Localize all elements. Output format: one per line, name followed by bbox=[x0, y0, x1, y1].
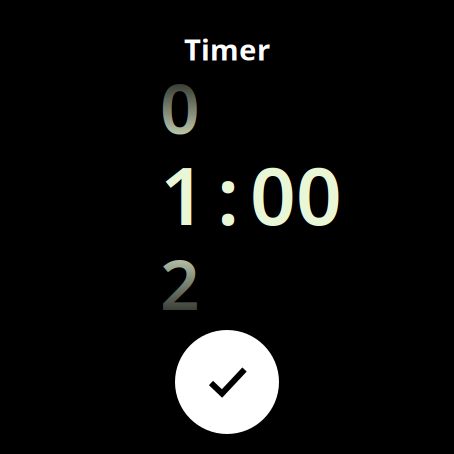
staticText: 1 bbox=[160, 141, 206, 247]
button[interactable]: Set timer bbox=[175, 330, 279, 434]
staticText: : bbox=[217, 141, 239, 247]
staticText: Timer bbox=[184, 29, 270, 68]
staticText: 00 bbox=[250, 141, 342, 247]
button[interactable]: Hours, 1 bbox=[152, 33, 208, 263]
staticText: 0 bbox=[160, 61, 200, 153]
staticText: 2 bbox=[160, 237, 200, 329]
button[interactable]: Minutes, 00 bbox=[248, 148, 344, 240]
